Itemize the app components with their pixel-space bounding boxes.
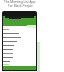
button[interactable] xyxy=(3,28,36,32)
button[interactable] xyxy=(3,48,36,52)
button[interactable] xyxy=(3,44,36,48)
button[interactable] xyxy=(3,36,36,40)
button[interactable] xyxy=(2,11,37,16)
staticText: The Meeting List App xyxy=(4,0,36,4)
staticText: For Black People xyxy=(8,4,33,8)
button[interactable] xyxy=(3,52,36,56)
button[interactable] xyxy=(3,16,36,26)
button[interactable] xyxy=(3,63,36,67)
button[interactable] xyxy=(3,40,36,44)
button[interactable] xyxy=(3,32,36,36)
button[interactable] xyxy=(3,24,36,28)
button[interactable] xyxy=(3,56,36,60)
button[interactable] xyxy=(3,60,36,64)
